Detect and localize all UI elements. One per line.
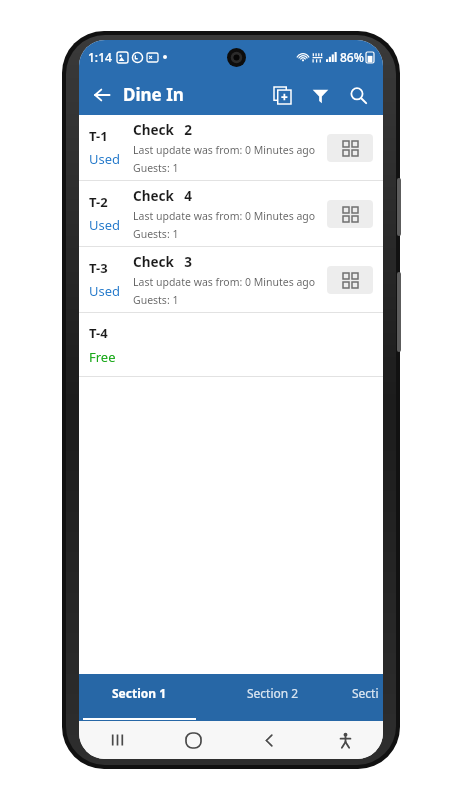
button[interactable]: Filter [301,76,339,114]
staticText: 86% [340,49,364,65]
button[interactable]: Back [249,721,289,759]
staticText: Guests: 1 [133,161,179,175]
staticText: T-2 [89,193,108,211]
button[interactable]: Secti [347,674,383,721]
button[interactable]: Add [263,76,301,114]
staticText: Dine In [123,83,184,106]
staticText: T-3 [89,259,108,277]
staticText: Check 3 [133,253,193,271]
staticText: Used [89,150,121,168]
staticText: T-1 [89,127,108,145]
button[interactable]: Table actions [327,134,373,162]
staticText: T-4 [89,324,108,342]
button[interactable]: T-1 [79,115,383,180]
staticText: Section 2 [247,685,299,701]
button[interactable]: Section 1 [79,674,199,721]
staticText: Guests: 1 [133,293,179,307]
staticText: Secti [352,685,379,701]
staticText: 1:14 [88,49,112,65]
staticText: Guests: 1 [133,227,179,241]
staticText: Last update was from: 0 Minutes ago [133,209,316,223]
staticText: Last update was from: 0 Minutes ago [133,275,316,289]
button[interactable]: Section 2 [199,674,347,721]
staticText: Used [89,282,121,300]
staticText: Check 4 [133,187,193,205]
button[interactable]: T-2 [79,181,383,246]
staticText: Used [89,216,121,234]
button[interactable]: Search [339,76,377,114]
button[interactable]: T-4 [79,313,383,376]
staticText: Section 1 [112,685,167,701]
button[interactable]: Back [85,78,119,112]
button[interactable]: Table actions [327,200,373,228]
button[interactable]: Table actions [327,266,373,294]
button[interactable]: Home [173,721,213,759]
staticText: Free [89,348,116,366]
button[interactable]: Accessibility [325,721,365,759]
staticText: Last update was from: 0 Minutes ago [133,143,316,157]
staticText: Check 2 [133,121,193,139]
button[interactable]: T-3 [79,247,383,312]
button[interactable]: Recents [97,721,137,759]
